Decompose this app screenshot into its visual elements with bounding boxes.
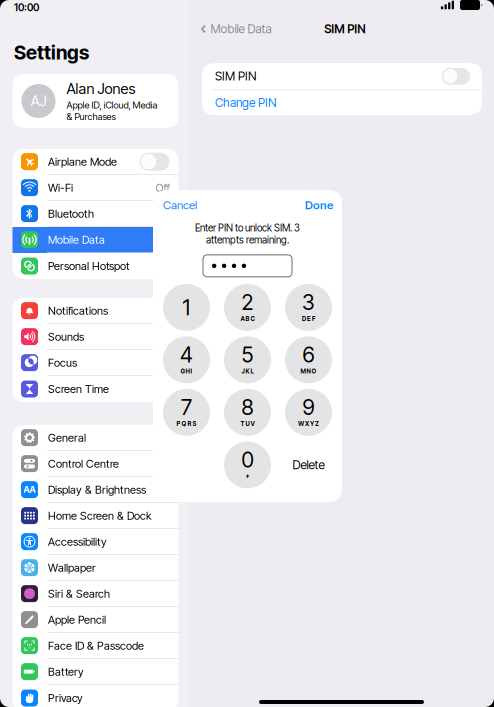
button[interactable]: 2 <box>224 284 271 331</box>
staticText: Wi-Fi <box>48 181 73 194</box>
staticText: AJ <box>30 92 46 110</box>
staticText: Privacy <box>48 691 83 705</box>
button[interactable]: 3 <box>285 284 332 331</box>
staticText: Alan Jones <box>66 80 135 97</box>
staticText: SIM PIN <box>215 69 256 83</box>
staticText: AA <box>23 484 35 495</box>
staticText: Sounds <box>48 330 84 343</box>
button[interactable]: Change PIN <box>202 90 482 115</box>
button[interactable]: Focus <box>12 350 178 376</box>
staticText: 0 <box>241 447 253 473</box>
button[interactable]: Home Screen & Dock <box>12 503 178 529</box>
staticText: 2 <box>241 289 253 315</box>
staticText: Settings <box>14 41 89 64</box>
staticText: D E F <box>302 315 315 322</box>
staticText: 8 <box>241 394 253 420</box>
button[interactable]: 9 <box>285 389 332 436</box>
staticText: Bluetooth <box>48 207 94 220</box>
staticText: Accessibility <box>48 535 107 548</box>
staticText: A B C <box>240 315 254 322</box>
staticText: SIM PIN <box>324 22 365 36</box>
staticText: General <box>48 431 86 444</box>
staticText: Screen Time <box>48 382 109 396</box>
button[interactable]: Control Centre <box>12 451 178 477</box>
staticText: Focus <box>48 356 77 369</box>
staticText: Mobile Data <box>210 22 271 36</box>
button[interactable]: AA <box>12 477 178 503</box>
button[interactable]: Cancel <box>153 190 197 220</box>
button[interactable]: Done <box>305 190 342 220</box>
button[interactable]: Accessibility <box>12 529 178 555</box>
staticText: 10:00 <box>14 1 39 14</box>
staticText: Notifications <box>48 304 108 317</box>
button[interactable]: Airplane Mode <box>12 149 178 175</box>
button[interactable]: Wi-Fi <box>12 175 178 201</box>
staticText: 7 <box>181 394 192 420</box>
button[interactable]: Face ID & Passcode <box>12 633 178 659</box>
staticText: 9 <box>302 394 314 420</box>
button[interactable]: Wallpaper <box>12 555 178 581</box>
staticText: 4 <box>180 342 193 368</box>
staticText: Home Screen & Dock <box>48 509 152 522</box>
button[interactable]: Notifications <box>12 298 178 324</box>
button[interactable]: Apple Pencil <box>12 607 178 633</box>
staticText: Change PIN <box>215 95 276 110</box>
staticText: Cancel <box>163 198 197 212</box>
staticText: Mobile Data <box>48 233 105 246</box>
button[interactable]: 4 <box>163 336 210 383</box>
staticText: Display & Brightness <box>48 483 146 496</box>
button[interactable]: Siri & Search <box>12 581 178 607</box>
staticText: T U V <box>240 420 254 427</box>
staticText: Apple ID, iCloud, Media <box>66 100 157 111</box>
button[interactable]: 5 <box>224 336 271 383</box>
button[interactable]: Sounds <box>12 324 178 350</box>
staticText: Apple Pencil <box>48 613 106 626</box>
staticText: Battery <box>48 665 84 678</box>
staticText: Siri & Search <box>48 587 110 600</box>
staticText: W X Y Z <box>298 420 319 427</box>
button[interactable]: Mobile Data <box>12 227 178 253</box>
staticText: Personal Hotspot <box>48 259 130 273</box>
button[interactable]: 6 <box>285 336 332 383</box>
button[interactable]: Delete <box>285 441 332 488</box>
staticText: Face ID & Passcode <box>48 639 144 652</box>
staticText: P Q R S <box>176 420 196 427</box>
staticText: 3 <box>302 289 315 315</box>
staticText: J K L <box>241 368 253 375</box>
button[interactable]: Screen Time <box>12 376 178 402</box>
button[interactable]: Bluetooth <box>12 201 178 227</box>
button[interactable]: Battery <box>12 659 178 685</box>
staticText: 1 <box>182 294 190 320</box>
button[interactable]: 0 <box>224 441 271 488</box>
staticText: + <box>245 473 249 480</box>
button[interactable]: 1 <box>163 284 210 331</box>
staticText: attempts remaining. <box>206 234 289 246</box>
staticText: 6 <box>302 342 314 368</box>
staticText: Delete <box>292 458 324 472</box>
staticText: 5 <box>241 342 253 368</box>
button[interactable]: AJ <box>12 74 178 128</box>
button[interactable]: 7 <box>163 389 210 436</box>
button[interactable]: Mobile Data <box>189 14 271 44</box>
staticText: Done <box>305 198 333 212</box>
staticText: Off <box>155 181 169 194</box>
staticText: Airplane Mode <box>48 155 117 168</box>
button[interactable]: 8 <box>224 389 271 436</box>
staticText: Control Centre <box>48 457 119 470</box>
button[interactable]: General <box>12 425 178 451</box>
staticText: M N O <box>300 368 316 375</box>
staticText: G H I <box>180 368 192 375</box>
button[interactable]: Personal Hotspot <box>12 253 178 279</box>
staticText: & Purchases <box>66 111 115 122</box>
staticText: Wallpaper <box>48 561 96 574</box>
button[interactable]: Privacy <box>12 685 178 707</box>
staticText: Enter PIN to unlock SIM. 3 <box>195 222 300 234</box>
